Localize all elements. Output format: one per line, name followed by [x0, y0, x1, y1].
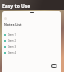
staticText: Item 1: [8, 33, 16, 37]
button[interactable]: Item 3: [2, 44, 61, 50]
staticText: Notes List: [4, 22, 22, 27]
button[interactable]: Item 4: [2, 50, 61, 56]
button[interactable]: Back: [4, 17, 7, 20]
staticText: Easy to Use: [2, 3, 31, 10]
button[interactable]: Item 1: [2, 32, 61, 38]
button[interactable]: Action: [51, 64, 57, 68]
staticText: Item 3: [8, 45, 16, 49]
staticText: Item 4: [8, 51, 16, 55]
button[interactable]: Item 2: [2, 38, 61, 44]
staticText: Item 2: [8, 39, 16, 43]
